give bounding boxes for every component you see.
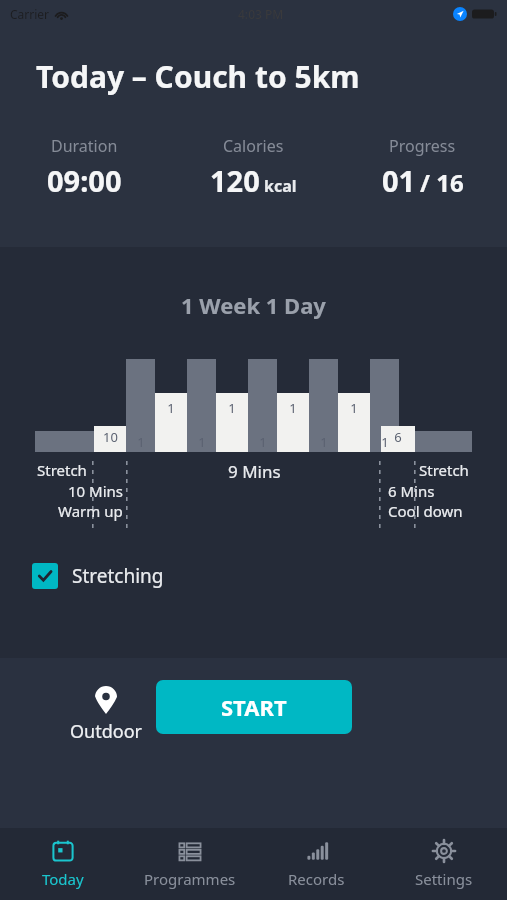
staticText: 120 <box>210 161 260 200</box>
staticText: 10 <box>103 428 118 446</box>
staticText: Records <box>288 869 345 889</box>
staticText: / 16 <box>420 166 464 199</box>
button[interactable]: Records <box>253 828 380 900</box>
staticText: 1 <box>320 433 328 451</box>
other: Programmes <box>178 839 202 863</box>
staticText: Progress <box>389 135 456 157</box>
staticText: 1 <box>198 433 206 451</box>
staticText: Stretch <box>419 460 469 480</box>
staticText: Programmes <box>144 869 236 889</box>
staticText: 9 Mins <box>228 460 281 483</box>
button[interactable]: Outdoor <box>64 680 148 750</box>
staticText: 6 Mins <box>388 481 435 501</box>
staticText: 01 <box>382 161 416 200</box>
staticText: kcal <box>264 175 297 197</box>
button[interactable]: START <box>156 680 352 734</box>
staticText: START <box>221 692 287 722</box>
staticText: Stretching <box>72 563 164 589</box>
staticText: 1 Week 1 Day <box>181 290 326 320</box>
staticText: 6 <box>394 428 402 446</box>
staticText: 1 <box>381 433 389 451</box>
staticText: 1 <box>228 399 236 417</box>
staticText: 1 <box>259 433 267 451</box>
button[interactable]: Settings <box>380 828 507 900</box>
staticText: 1 <box>350 399 358 417</box>
staticText: 10 Mins <box>68 481 123 501</box>
staticText: Today <box>42 869 84 889</box>
staticText: Cool down <box>388 501 463 521</box>
staticText: Today – Couch to 5km <box>36 56 360 97</box>
staticText: 1 <box>289 399 297 417</box>
button[interactable]: Stretching <box>28 559 168 593</box>
other: Settings <box>432 839 456 863</box>
other: Records <box>305 839 329 863</box>
button[interactable]: Today <box>0 828 126 900</box>
staticText: 1 <box>167 399 175 417</box>
staticText: Duration <box>51 135 118 157</box>
other: Today <box>51 839 75 863</box>
staticText: Warm up <box>58 501 123 521</box>
staticText: 4:03 PM <box>238 6 284 22</box>
staticText: Outdoor <box>70 719 142 744</box>
staticText: Calories <box>223 135 284 157</box>
staticText: Stretch <box>37 460 87 480</box>
staticText: Settings <box>415 869 473 889</box>
staticText: 1 <box>137 433 145 451</box>
staticText: 09:00 <box>47 161 122 200</box>
button[interactable]: Programmes <box>126 828 253 900</box>
staticText: Carrier <box>10 6 50 22</box>
